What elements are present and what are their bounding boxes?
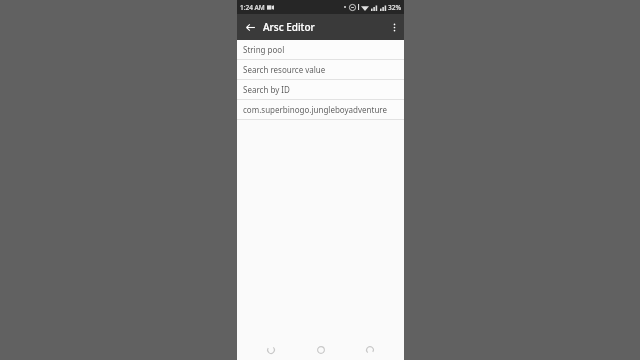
button[interactable]: Back [256, 340, 286, 360]
button[interactable]: More options [384, 14, 404, 40]
staticText: String pool [243, 44, 285, 55]
staticText: 32% [388, 3, 401, 12]
staticText: Search resource value [243, 64, 326, 75]
button[interactable]: Back [237, 14, 263, 40]
button[interactable]: Home [306, 340, 336, 360]
staticText: Arsc Editor [263, 20, 315, 34]
button[interactable]: String pool [237, 40, 404, 59]
button[interactable]: Recent apps [355, 340, 385, 360]
button[interactable]: Search by ID [237, 80, 404, 99]
button[interactable]: Search resource value [237, 60, 404, 79]
staticText: Search by ID [243, 84, 290, 95]
button[interactable]: com.superbinogo.jungleboyadventure [237, 100, 404, 119]
staticText: 1:24 AM [240, 3, 265, 12]
staticText: com.superbinogo.jungleboyadventure [243, 104, 388, 115]
